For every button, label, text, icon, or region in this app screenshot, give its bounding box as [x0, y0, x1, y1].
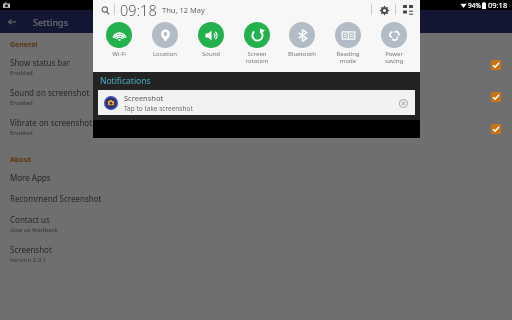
button[interactable]: Wi-Fi — [99, 19, 139, 58]
staticText: Screen rotation — [237, 50, 277, 65]
staticText: Screenshot — [10, 244, 52, 255]
staticText: About — [10, 155, 32, 165]
staticText: Tap to take screenshot — [124, 104, 193, 113]
staticText: Sound on screenshot — [10, 87, 90, 98]
staticText: Notifications — [100, 75, 151, 87]
button[interactable]: Screen rotation — [237, 19, 277, 65]
staticText: Give us feedback — [10, 226, 58, 234]
button[interactable]: Vibrate on screenshot — [0, 112, 512, 142]
staticText: Location — [145, 50, 185, 58]
staticText: General — [10, 40, 38, 50]
button[interactable]: Settings — [377, 3, 391, 17]
staticText: 09:18 — [488, 0, 508, 10]
staticText: More Apps — [10, 172, 51, 183]
button[interactable]: Power saving — [374, 19, 414, 65]
button[interactable]: Search — [98, 3, 112, 17]
staticText: Vibrate on screenshot — [10, 117, 93, 128]
button[interactable]: Enabled checkbox — [491, 92, 501, 102]
button[interactable]: Back — [0, 10, 23, 33]
button[interactable]: Enabled checkbox — [491, 124, 501, 134]
staticText: 09:18 — [120, 0, 157, 19]
staticText: Recommend Screenshot — [10, 193, 102, 204]
staticText: Thu, 12 May — [162, 5, 205, 15]
button[interactable]: More Apps — [0, 167, 512, 188]
staticText: Version 2.0.1 — [10, 256, 47, 264]
staticText: Enabled — [10, 129, 33, 137]
button[interactable]: Screenshot — [0, 239, 512, 269]
button[interactable]: Show status bar — [0, 52, 512, 82]
button[interactable]: Quick settings grid — [401, 3, 415, 17]
button[interactable]: Sound — [191, 19, 231, 58]
staticText: Power saving — [374, 50, 414, 65]
staticText: Enabled — [10, 69, 33, 77]
staticText: Wi-Fi — [99, 50, 139, 58]
staticText: Enabled — [10, 99, 33, 107]
button[interactable]: Reading mode — [328, 19, 368, 65]
button[interactable]: Recommend Screenshot — [0, 188, 512, 209]
button[interactable]: Contact us — [0, 209, 512, 239]
staticText: Show status bar — [10, 57, 71, 68]
staticText: Settings — [33, 16, 69, 28]
staticText: Screenshot — [124, 93, 164, 103]
button[interactable]: Sound on screenshot — [0, 82, 512, 112]
button[interactable]: Bluetooth — [282, 19, 322, 58]
button[interactable]: Screenshot — [98, 90, 415, 115]
staticText: Contact us — [10, 214, 50, 225]
button[interactable]: Enabled checkbox — [491, 60, 501, 70]
staticText: Reading mode — [328, 50, 368, 65]
staticText: 94% — [468, 1, 481, 10]
button[interactable]: Dismiss notification — [396, 96, 410, 110]
button[interactable]: Location — [145, 19, 185, 58]
staticText: Sound — [191, 50, 231, 58]
staticText: Bluetooth — [282, 50, 322, 58]
